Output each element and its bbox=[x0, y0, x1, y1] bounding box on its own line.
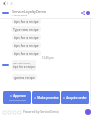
button[interactable]: tips for a recipe bbox=[12, 18, 41, 24]
button[interactable]: tips for a recipe bbox=[12, 42, 41, 48]
staticText: Powered by ServiceDemo bbox=[23, 110, 59, 114]
staticText: A quick demo bbox=[12, 13, 28, 16]
staticText: tips for a recipe bbox=[13, 65, 35, 69]
button[interactable]: Camera bbox=[7, 110, 12, 115]
staticText: Acquire order bbox=[66, 96, 87, 100]
button[interactable]: Gallery bbox=[12, 110, 17, 115]
staticText: Approve bbox=[13, 94, 26, 98]
button[interactable]: Make promise bbox=[32, 91, 60, 104]
button[interactable]: Profile bbox=[86, 11, 90, 15]
button[interactable]: Open chat bbox=[85, 109, 91, 115]
staticText: Type new recipe bbox=[13, 27, 39, 32]
staticText: 12:45 pm bbox=[42, 56, 54, 60]
staticText: recommended bbox=[9, 98, 26, 101]
button[interactable]: gonna recipe bbox=[12, 74, 37, 80]
staticText: tips for a recipe bbox=[14, 51, 39, 56]
button[interactable]: More bbox=[17, 110, 22, 115]
button[interactable]: Type new recipe bbox=[11, 26, 41, 32]
button[interactable]: Get site loyalty, Native bbox=[12, 60, 36, 71]
button[interactable]: Acquire order bbox=[61, 91, 89, 104]
staticText: tips for a recipe bbox=[14, 43, 39, 48]
button[interactable]: Approve bbox=[3, 91, 31, 104]
button[interactable]: Attach bbox=[2, 110, 7, 115]
button[interactable]: Back bbox=[2, 1, 6, 5]
staticText: Make promise bbox=[37, 96, 59, 100]
button[interactable]: Forward bbox=[9, 1, 13, 5]
staticText: ServiceLoyaltyDemo bbox=[12, 9, 47, 14]
staticText: tips for a recipe bbox=[14, 19, 39, 24]
button[interactable]: tips for a recipe bbox=[12, 50, 41, 56]
button[interactable]: Share bbox=[80, 10, 85, 15]
button[interactable]: tips for a recipe bbox=[12, 34, 41, 40]
staticText: Get site loyalty, Native bbox=[13, 61, 35, 64]
staticText: gonna recipe bbox=[14, 75, 35, 80]
staticText: tips for a recipe bbox=[14, 35, 39, 40]
